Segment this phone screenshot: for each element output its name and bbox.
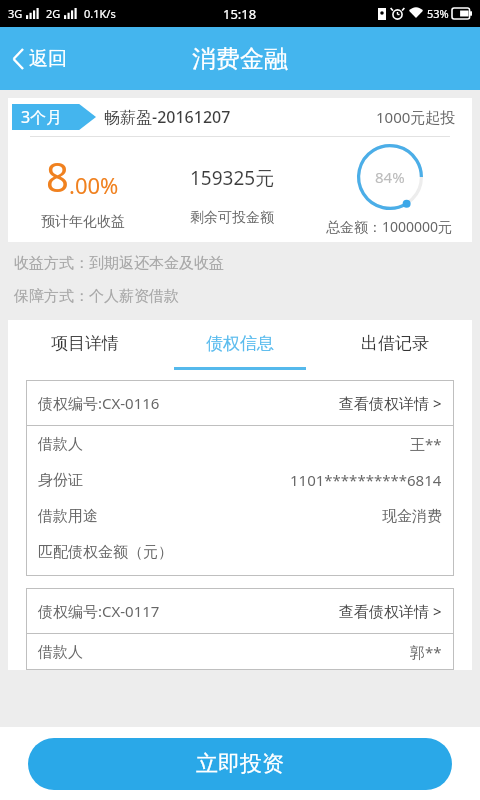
staticText: 出借记录 — [361, 333, 429, 354]
staticText: 收益方式：到期返还本金及收益 — [14, 254, 224, 273]
staticText: 消费金融 — [192, 44, 288, 74]
staticText: 53% — [427, 6, 449, 21]
button[interactable]: 债权编号:CX-0117 — [26, 588, 454, 670]
staticText: 剩余可投金额 — [190, 209, 274, 227]
staticText: 现金消费 — [382, 507, 442, 526]
staticText: 债权编号:CX-0117 — [38, 601, 160, 621]
button[interactable]: 立即投资 — [28, 738, 452, 790]
staticText: 畅薪盈-20161207 — [104, 106, 231, 128]
button[interactable]: 项目详情 — [8, 320, 162, 367]
staticText: 借款人 — [38, 435, 83, 454]
button[interactable]: 返回 — [0, 41, 79, 77]
staticText: 0.1K/s — [84, 6, 116, 21]
staticText: 王** — [410, 434, 442, 454]
button[interactable]: 债权信息 — [162, 320, 317, 367]
staticText: 借款用途 — [38, 507, 98, 526]
staticText: 借款人 — [38, 643, 83, 662]
staticText: 8 — [46, 149, 69, 203]
button[interactable]: 3个月 — [8, 98, 472, 242]
staticText: 总金额：1000000元 — [326, 217, 453, 236]
button[interactable]: 出借记录 — [317, 320, 472, 367]
staticText: 84% — [375, 167, 405, 187]
staticText: 查看债权详情 > — [339, 601, 442, 621]
staticText: 匹配债权金额（元） — [38, 543, 173, 562]
staticText: 15:18 — [223, 5, 257, 23]
staticText: 预计年化收益 — [41, 213, 125, 231]
staticText: 返回 — [29, 47, 67, 71]
staticText: 债权信息 — [206, 333, 274, 354]
staticText: .00% — [69, 170, 119, 200]
staticText: 159325元 — [190, 165, 275, 191]
staticText: 3个月 — [21, 106, 63, 128]
staticText: 债权编号:CX-0116 — [38, 393, 160, 413]
staticText: 查看债权详情 > — [339, 393, 442, 413]
staticText: 保障方式：个人薪资借款 — [14, 287, 179, 306]
staticText: 立即投资 — [196, 750, 284, 778]
staticText: 1101**********6814 — [290, 470, 442, 490]
staticText: 身份证 — [38, 471, 83, 490]
staticText: 郭** — [410, 642, 442, 662]
button[interactable]: 债权编号:CX-0116 — [26, 380, 454, 576]
staticText: 1000元起投 — [376, 107, 456, 127]
staticText: 2G — [46, 6, 61, 21]
staticText: 项目详情 — [51, 333, 119, 354]
staticText: 3G — [8, 6, 23, 21]
